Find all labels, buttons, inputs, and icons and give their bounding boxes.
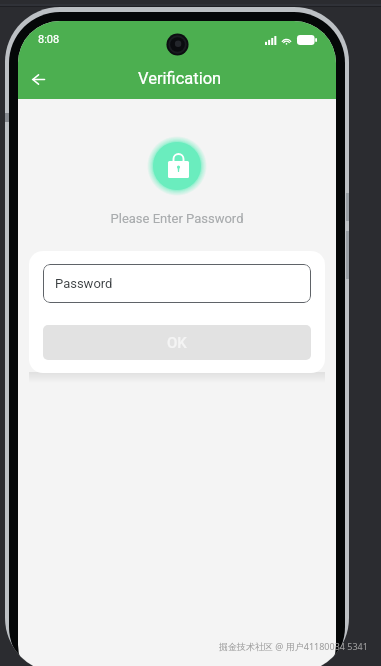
staticText: 8:08	[38, 33, 60, 46]
staticText: 掘金技术社区 @ 用户41180034 5341	[219, 640, 368, 652]
staticText: OK	[167, 334, 187, 352]
staticText: Please Enter Password	[18, 211, 336, 226]
button[interactable]: Back	[18, 57, 60, 101]
button[interactable]: Password	[43, 264, 311, 303]
staticText: Password	[55, 276, 113, 291]
staticText: Verification	[138, 69, 222, 88]
